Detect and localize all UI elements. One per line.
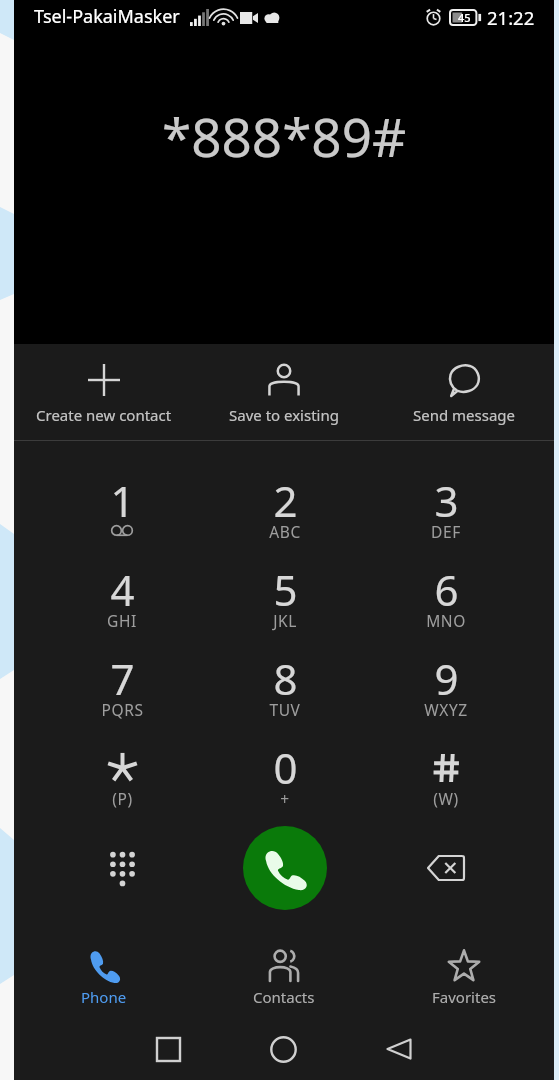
- button[interactable]: Call: [243, 826, 327, 910]
- staticText: 2: [273, 472, 298, 529]
- button[interactable]: Show dialpad: [82, 828, 162, 908]
- staticText: 9: [434, 650, 459, 707]
- button[interactable]: 0: [204, 724, 366, 813]
- button[interactable]: Recents: [144, 1025, 192, 1073]
- button[interactable]: 6: [365, 546, 527, 635]
- staticText: Tsel-PakaiMasker: [34, 4, 180, 29]
- staticText: (W): [433, 788, 459, 809]
- button[interactable]: Contacts: [194, 940, 374, 1012]
- staticText: WXYZ: [424, 699, 468, 720]
- button[interactable]: Send message: [374, 344, 554, 441]
- staticText: JKL: [273, 610, 297, 631]
- staticText: (P): [112, 788, 133, 809]
- button[interactable]: 1: [41, 457, 203, 546]
- staticText: 1: [110, 472, 135, 529]
- staticText: Save to existing: [229, 405, 339, 425]
- staticText: 8: [273, 650, 298, 707]
- button[interactable]: Delete: [406, 828, 486, 908]
- staticText: 21:22: [487, 5, 535, 30]
- button[interactable]: 8: [204, 635, 366, 724]
- button[interactable]: (W): [365, 724, 527, 813]
- button[interactable]: Back: [375, 1025, 423, 1073]
- staticText: Phone: [81, 987, 127, 1007]
- button[interactable]: 2: [204, 457, 366, 546]
- staticText: Contacts: [253, 987, 315, 1007]
- button[interactable]: Home: [259, 1025, 307, 1073]
- staticText: *888*89#: [162, 100, 407, 172]
- staticText: DEF: [431, 521, 461, 542]
- staticText: 7: [110, 650, 135, 707]
- staticText: TUV: [269, 699, 301, 720]
- button[interactable]: Create new contact: [14, 344, 194, 441]
- button[interactable]: 4: [41, 546, 203, 635]
- staticText: 4: [110, 561, 135, 618]
- staticText: 3: [434, 472, 459, 529]
- staticText: 0: [273, 739, 298, 796]
- button[interactable]: Save to existing: [194, 344, 374, 441]
- staticText: +: [280, 788, 290, 809]
- button[interactable]: 3: [365, 457, 527, 546]
- button[interactable]: 9: [365, 635, 527, 724]
- staticText: PQRS: [101, 699, 144, 720]
- button[interactable]: Favorites: [374, 940, 554, 1012]
- button[interactable]: 5: [204, 546, 366, 635]
- staticText: Create new contact: [36, 405, 172, 425]
- staticText: GHI: [107, 610, 137, 631]
- staticText: MNO: [426, 610, 466, 631]
- button[interactable]: (P): [41, 724, 203, 813]
- staticText: Send message: [413, 405, 516, 425]
- button[interactable]: 7: [41, 635, 203, 724]
- staticText: Favorites: [432, 987, 497, 1007]
- staticText: 5: [273, 561, 298, 618]
- staticText: ABC: [269, 521, 301, 542]
- staticText: 6: [434, 561, 459, 618]
- staticText: 45: [458, 10, 471, 25]
- button[interactable]: Phone: [14, 940, 194, 1012]
